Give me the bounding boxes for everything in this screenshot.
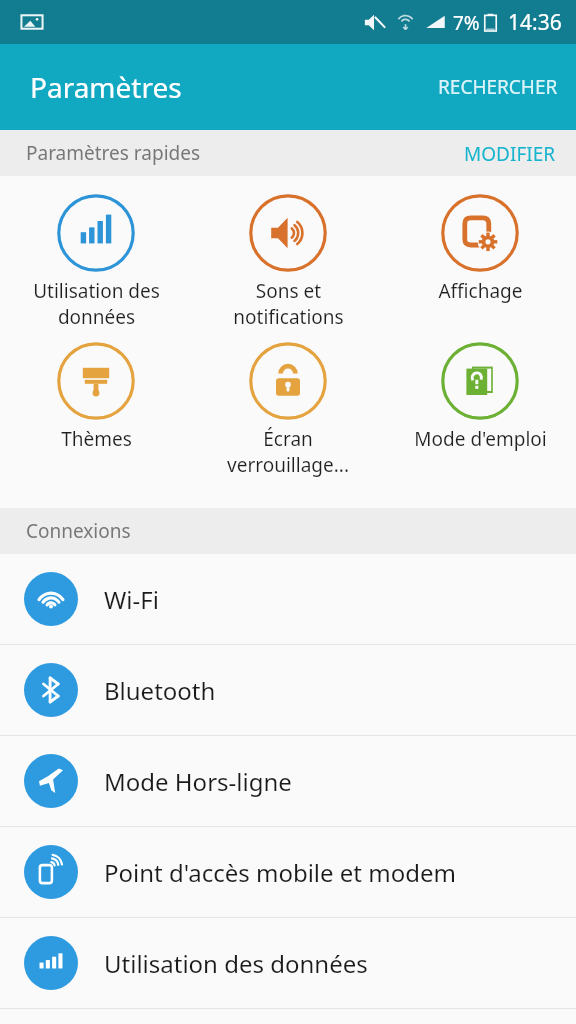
staticText: Écran verrouillage... xyxy=(227,426,349,478)
staticText: RECHERCHER xyxy=(438,74,558,100)
button[interactable]: Thèmes xyxy=(0,340,192,454)
button[interactable]: RECHERCHER xyxy=(420,58,576,116)
staticText: Bluetooth xyxy=(104,674,216,707)
button[interactable]: Utilisation des données xyxy=(0,192,192,332)
button[interactable]: MODIFIER xyxy=(444,130,576,176)
staticText: Affichage xyxy=(438,278,523,304)
button[interactable]: Mode d'emploi xyxy=(384,340,576,454)
button[interactable]: Sons et notifications xyxy=(192,192,384,332)
staticText: Connexions xyxy=(26,518,131,544)
staticText: Thèmes xyxy=(61,426,132,452)
staticText: Paramètres xyxy=(30,68,182,106)
button[interactable]: Mode Hors-ligne xyxy=(0,736,576,826)
staticText: Utilisation des données xyxy=(33,278,160,330)
button[interactable]: Point d'accès mobile et modem xyxy=(0,827,576,917)
staticText: Wi-Fi xyxy=(104,583,159,616)
button[interactable]: Bluetooth xyxy=(0,645,576,735)
staticText: Mode Hors-ligne xyxy=(104,765,292,798)
staticText: Point d'accès mobile et modem xyxy=(104,856,456,889)
staticText: 14:36 xyxy=(508,8,562,37)
staticText: 7% xyxy=(453,10,480,36)
button[interactable]: Utilisation des données xyxy=(0,918,576,1008)
staticText: Utilisation des données xyxy=(104,947,368,980)
staticText: MODIFIER xyxy=(464,141,556,165)
staticText: Sons et notifications xyxy=(233,278,344,330)
button[interactable]: Affichage xyxy=(384,192,576,306)
button[interactable]: Wi-Fi xyxy=(0,554,576,644)
staticText: Mode d'emploi xyxy=(414,426,547,452)
staticText: Paramètres rapides xyxy=(26,140,201,166)
button[interactable]: Écran verrouillage... xyxy=(192,340,384,480)
